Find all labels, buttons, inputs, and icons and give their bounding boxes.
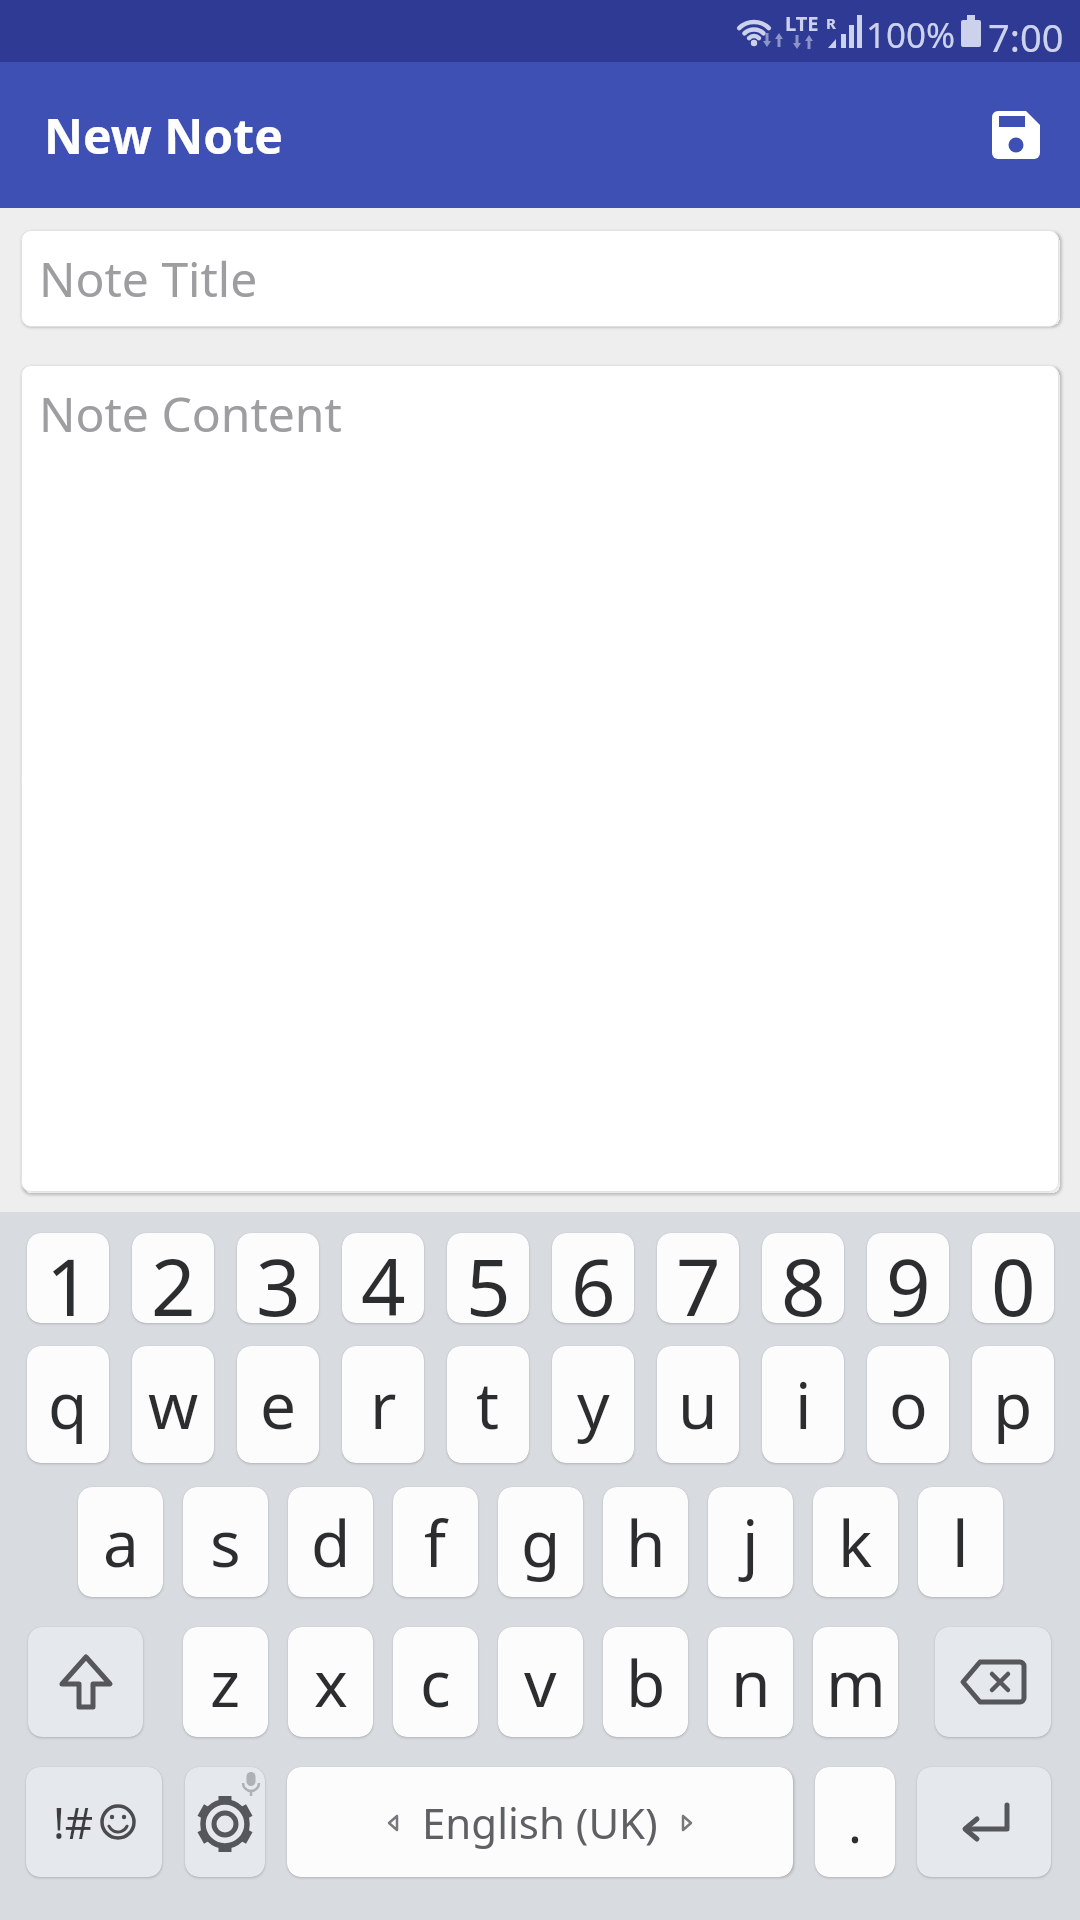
staticText: d xyxy=(311,1499,351,1586)
button[interactable]: 1 xyxy=(0,1212,1080,1920)
staticText: q xyxy=(48,1361,88,1448)
staticText: u xyxy=(678,1361,718,1448)
staticText: 0 xyxy=(991,1233,1036,1323)
staticText: New Note xyxy=(44,103,283,168)
staticText: r xyxy=(370,1361,397,1448)
button[interactable] xyxy=(992,111,1040,159)
button[interactable]: 7 xyxy=(657,1233,739,1323)
button[interactable]: y xyxy=(552,1346,634,1463)
button[interactable]: 4 xyxy=(342,1233,424,1323)
staticText: a xyxy=(103,1499,139,1586)
staticText: 7:00 xyxy=(988,11,1064,55)
staticText: l xyxy=(952,1499,969,1586)
button[interactable]: n xyxy=(708,1627,793,1737)
staticText: o xyxy=(889,1361,928,1448)
button[interactable] xyxy=(185,1767,265,1877)
button[interactable]: 1 xyxy=(27,1233,109,1323)
staticText: Note Content xyxy=(39,381,342,446)
button[interactable]: c xyxy=(393,1627,478,1737)
button[interactable]: Note Content xyxy=(21,365,1059,1192)
staticText: n xyxy=(731,1639,771,1726)
button[interactable]: m xyxy=(813,1627,898,1737)
button[interactable]: b xyxy=(603,1627,688,1737)
button[interactable]: v xyxy=(498,1627,583,1737)
button[interactable]: 0 xyxy=(972,1233,1054,1323)
staticText: k xyxy=(838,1499,873,1586)
button[interactable]: 9 xyxy=(867,1233,949,1323)
button[interactable]: 8 xyxy=(762,1233,844,1323)
staticText: 100% xyxy=(866,11,956,55)
staticText: !# xyxy=(53,1792,94,1852)
staticText: y xyxy=(577,1361,610,1448)
button[interactable]: 2 xyxy=(132,1233,214,1323)
staticText: Note Title xyxy=(39,246,258,311)
button[interactable]: o xyxy=(867,1346,949,1463)
staticText: English (UK) xyxy=(422,1794,658,1851)
staticText: i xyxy=(795,1361,812,1448)
button[interactable]: q xyxy=(27,1346,109,1463)
staticText: p xyxy=(993,1361,1033,1448)
button[interactable]: f xyxy=(393,1487,478,1597)
button[interactable]: k xyxy=(813,1487,898,1597)
staticText: t xyxy=(476,1361,500,1448)
staticText: 2 xyxy=(151,1233,196,1323)
button[interactable]: z xyxy=(183,1627,268,1737)
staticText: 7 xyxy=(676,1233,721,1323)
staticText: 5 xyxy=(466,1233,511,1323)
button[interactable]: j xyxy=(708,1487,793,1597)
button[interactable]: 6 xyxy=(552,1233,634,1323)
staticText: j xyxy=(742,1499,759,1586)
staticText: m xyxy=(826,1639,886,1726)
staticText: x xyxy=(314,1639,348,1726)
staticText: s xyxy=(210,1499,241,1586)
button[interactable]: d xyxy=(288,1487,373,1597)
button[interactable]: 3 xyxy=(237,1233,319,1323)
button[interactable]: l xyxy=(918,1487,1003,1597)
button[interactable]: e xyxy=(237,1346,319,1463)
button[interactable]: s xyxy=(183,1487,268,1597)
staticText: 8 xyxy=(781,1233,826,1323)
button[interactable]: a xyxy=(78,1487,163,1597)
staticText: 1 xyxy=(46,1233,91,1323)
button[interactable]: Note Title xyxy=(21,230,1059,327)
staticText: 4 xyxy=(361,1233,406,1323)
button[interactable]: u xyxy=(657,1346,739,1463)
staticText: LTE xyxy=(785,10,819,37)
button[interactable]: r xyxy=(342,1346,424,1463)
staticText: R xyxy=(826,13,836,33)
button[interactable] xyxy=(917,1767,1051,1877)
staticText: b xyxy=(626,1639,666,1726)
staticText: v xyxy=(524,1639,557,1726)
staticText: z xyxy=(210,1639,241,1726)
button[interactable]: g xyxy=(498,1487,583,1597)
button[interactable]: . xyxy=(815,1767,895,1877)
button[interactable] xyxy=(935,1627,1051,1737)
staticText: e xyxy=(260,1361,297,1448)
button[interactable]: h xyxy=(603,1487,688,1597)
button[interactable]: x xyxy=(288,1627,373,1737)
button[interactable]: !# xyxy=(26,1767,162,1877)
staticText: h xyxy=(626,1499,666,1586)
staticText: w xyxy=(148,1361,199,1448)
button[interactable]: i xyxy=(762,1346,844,1463)
staticText: . xyxy=(848,1787,862,1858)
button[interactable]: English (UK) xyxy=(287,1767,793,1877)
button[interactable]: t xyxy=(447,1346,529,1463)
button[interactable]: p xyxy=(972,1346,1054,1463)
staticText: g xyxy=(521,1499,561,1586)
staticText: 9 xyxy=(886,1233,931,1323)
button[interactable] xyxy=(28,1627,143,1737)
staticText: 6 xyxy=(571,1233,616,1323)
staticText: f xyxy=(424,1499,447,1586)
staticText: c xyxy=(420,1639,451,1726)
button[interactable]: 5 xyxy=(447,1233,529,1323)
button[interactable]: w xyxy=(132,1346,214,1463)
staticText: 3 xyxy=(256,1233,301,1323)
